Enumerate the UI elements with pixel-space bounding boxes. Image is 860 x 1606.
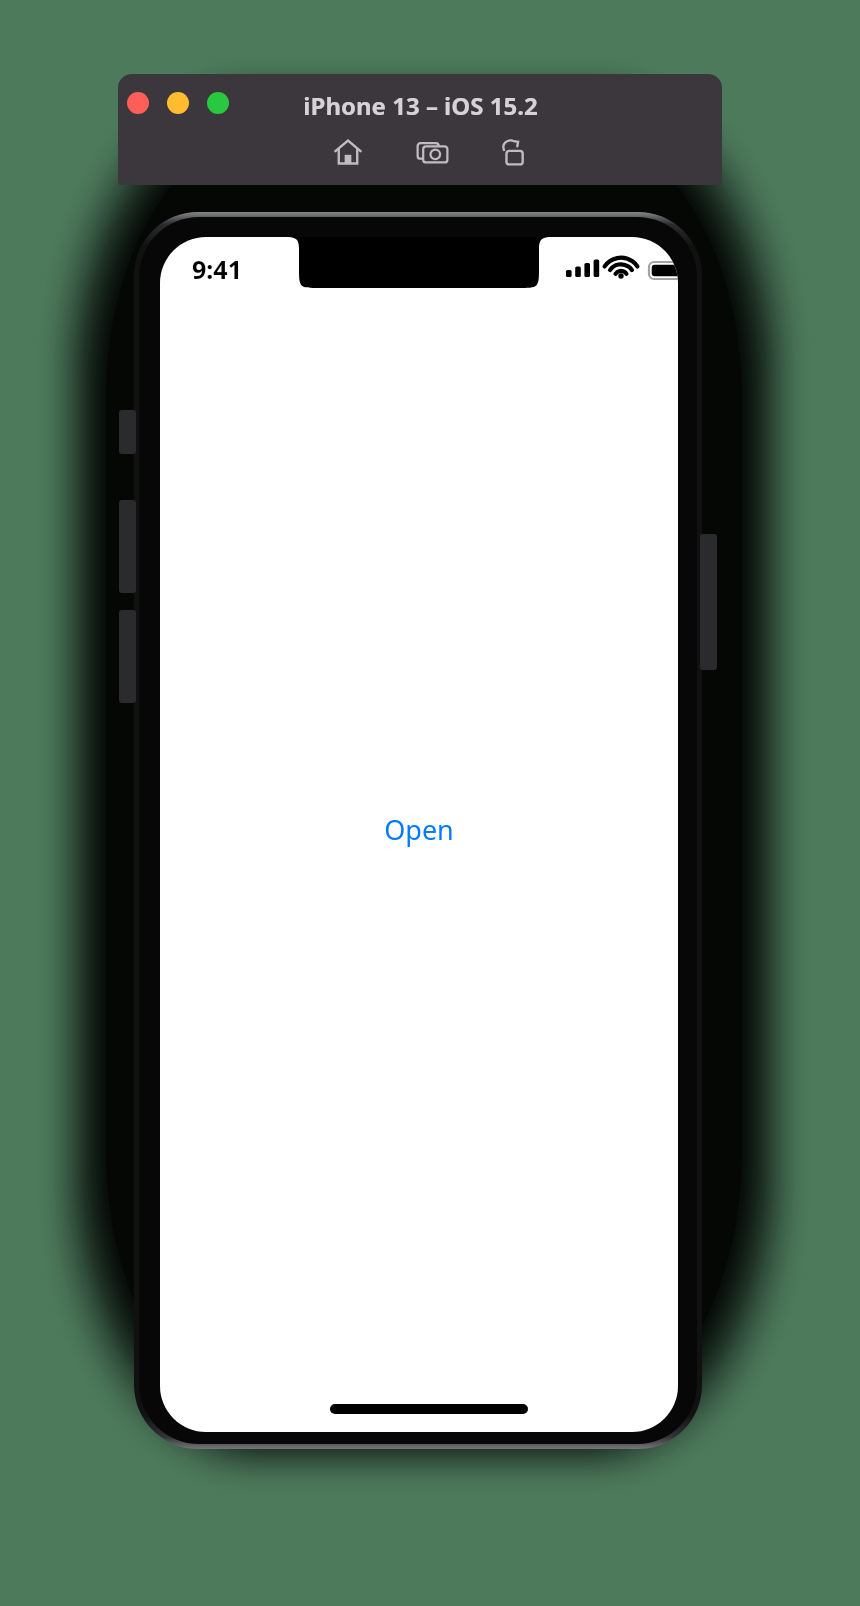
button[interactable]: Rotate — [492, 131, 534, 173]
button[interactable]: Close — [125, 90, 151, 116]
staticText: Open — [384, 811, 454, 848]
button[interactable]: Zoom — [205, 90, 231, 116]
button[interactable]: Screenshot — [411, 131, 453, 173]
staticText: 9:41 — [192, 252, 242, 285]
button[interactable]: Minimize — [165, 90, 191, 116]
button[interactable]: Home — [327, 131, 369, 173]
staticText: iPhone 13 – iOS 15.2 — [303, 89, 538, 122]
button[interactable]: Open — [349, 805, 489, 853]
